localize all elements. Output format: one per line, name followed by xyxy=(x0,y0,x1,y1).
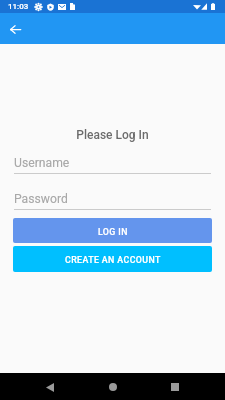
button[interactable]: Back xyxy=(4,18,26,40)
button[interactable]: LOG IN xyxy=(13,218,212,243)
staticText: Please Log In xyxy=(0,128,225,142)
staticText: CREATE AN ACCOUNT xyxy=(65,255,161,265)
button[interactable]: CREATE AN ACCOUNT xyxy=(13,246,212,272)
button[interactable]: Home xyxy=(101,375,125,399)
button[interactable]: Recent apps xyxy=(163,375,187,399)
staticText: Username xyxy=(14,156,70,170)
button[interactable]: Username xyxy=(14,156,211,170)
staticText: Password xyxy=(14,192,68,206)
staticText: LOG IN xyxy=(98,227,128,237)
button[interactable]: Back xyxy=(38,375,62,399)
staticText: 11:03 xyxy=(8,2,29,11)
button[interactable]: Password xyxy=(14,192,211,206)
